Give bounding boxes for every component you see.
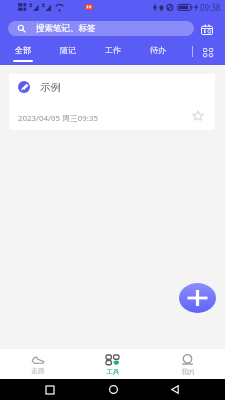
staticText: 工具 <box>106 367 120 376</box>
button[interactable]: 工作 <box>90 42 135 65</box>
staticText: 走路 <box>31 366 45 375</box>
button[interactable]: 随记 <box>45 42 90 65</box>
button[interactable]: 走路 <box>0 349 75 379</box>
button[interactable]: 搜索笔记、标签 <box>8 21 194 36</box>
button[interactable]: 工具 <box>75 349 150 379</box>
button[interactable]: Back <box>162 379 188 400</box>
button[interactable]: 示例 <box>9 74 215 130</box>
button[interactable]: Calendar <box>198 20 216 38</box>
staticText: 全部 <box>15 45 31 55</box>
button[interactable]: 我的 <box>150 349 225 379</box>
staticText: 我的 <box>181 367 195 376</box>
staticText: 示例 <box>40 81 61 94</box>
button[interactable]: Grid view <box>198 43 217 62</box>
staticText: 工作 <box>105 45 121 55</box>
staticText: 随记 <box>60 45 76 55</box>
staticText: 待办 <box>150 45 166 55</box>
button[interactable]: Recents <box>37 379 63 400</box>
staticText: 搜索笔记、标签 <box>36 23 96 34</box>
button[interactable]: Home <box>100 379 126 400</box>
staticText: 2023/04/05 周三09:35 <box>18 113 98 124</box>
button[interactable]: Add note <box>179 283 216 313</box>
button[interactable]: 全部 <box>0 42 45 65</box>
button[interactable]: 待办 <box>135 42 180 65</box>
button[interactable]: Favorite <box>191 108 205 122</box>
staticText: 09:38 <box>200 2 221 13</box>
